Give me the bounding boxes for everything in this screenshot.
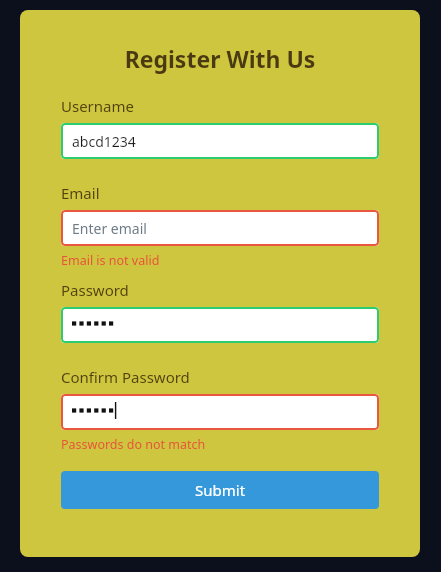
staticText: abcd1234	[72, 132, 136, 151]
button[interactable]	[61, 394, 379, 430]
staticText: Email is not valid	[61, 252, 160, 269]
button[interactable]: abcd1234	[61, 123, 379, 159]
staticText: Passwords do not match	[61, 436, 206, 453]
staticText: Email	[61, 183, 100, 203]
button[interactable]	[61, 307, 379, 343]
staticText: Password	[61, 280, 129, 300]
button[interactable]: Enter email	[61, 210, 379, 246]
staticText: Enter email	[72, 219, 147, 238]
staticText: Submit	[195, 480, 246, 500]
staticText: Confirm Password	[61, 367, 190, 387]
staticText: Username	[61, 96, 134, 116]
button[interactable]: Submit	[61, 471, 379, 509]
staticText: Register With Us	[61, 43, 379, 74]
